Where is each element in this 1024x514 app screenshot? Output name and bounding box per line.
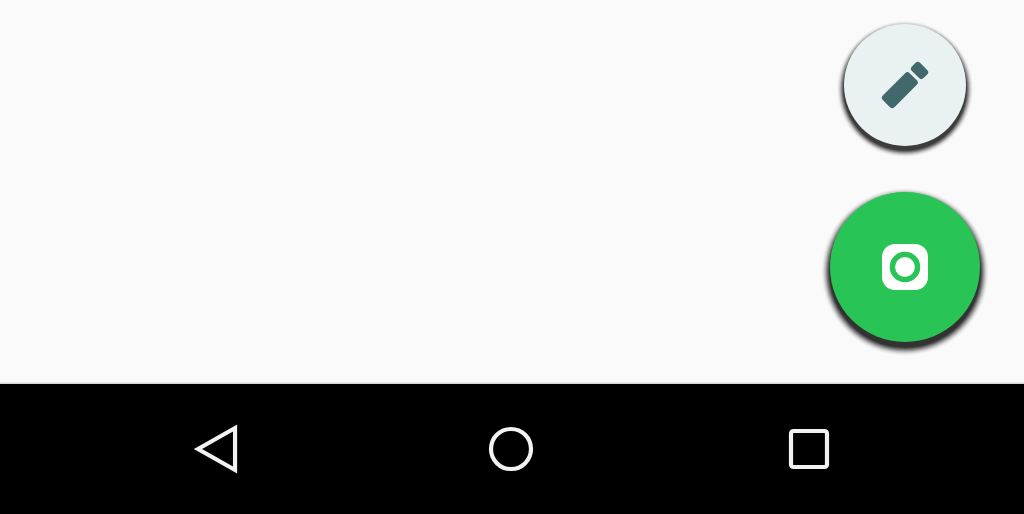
button[interactable]: Camera bbox=[0, 0, 1024, 514]
button[interactable]: Edit bbox=[0, 0, 1024, 514]
